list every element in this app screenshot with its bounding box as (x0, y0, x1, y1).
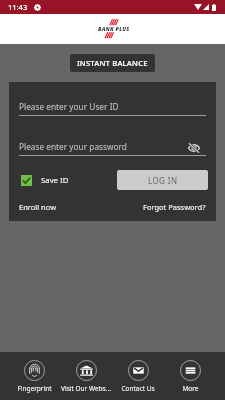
button[interactable]: Show password (187, 141, 201, 155)
button[interactable]: More (164, 352, 216, 400)
button[interactable]: Visit Our Webs... (60, 352, 112, 400)
staticText: Save ID (41, 175, 69, 186)
staticText: More (182, 384, 199, 393)
button[interactable]: Fingerprint (9, 352, 60, 400)
button[interactable]: INSTANT BALANCE (70, 54, 155, 72)
staticText: BANK PLUS (98, 25, 130, 32)
button[interactable]: Forgot Password? (143, 202, 206, 212)
button[interactable]: Enroll now (19, 202, 57, 212)
button[interactable]: Contact Us (112, 352, 164, 400)
staticText: 11:43 (8, 2, 28, 12)
staticText: Please enter your User ID (19, 101, 119, 112)
staticText: Please enter your password (19, 141, 127, 152)
button[interactable]: Save ID (18, 172, 72, 189)
staticText: Contact Us (121, 384, 155, 393)
staticText: INSTANT BALANCE (77, 58, 148, 68)
staticText: LOG IN (148, 175, 178, 186)
staticText: Visit Our Webs... (61, 384, 111, 393)
button[interactable]: LOG IN (117, 170, 208, 190)
staticText: Fingerprint (17, 384, 52, 393)
